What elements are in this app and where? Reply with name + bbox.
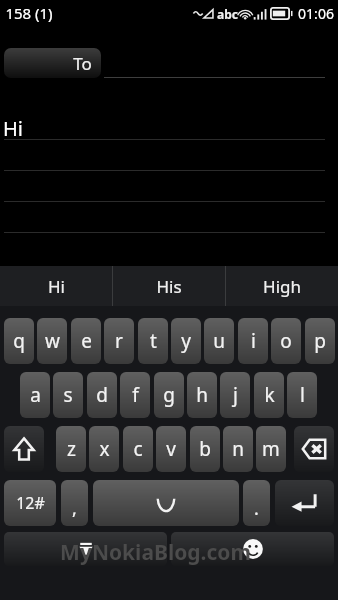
staticText: z — [67, 436, 76, 462]
staticText: High — [263, 275, 301, 298]
button[interactable]: i — [238, 318, 268, 364]
staticText: l — [300, 382, 305, 408]
staticText: 158 (1) — [5, 3, 53, 23]
staticText: j — [233, 382, 238, 408]
button[interactable]: n — [223, 426, 253, 472]
staticText: Hi — [3, 115, 23, 142]
button[interactable]: b — [190, 426, 220, 472]
button[interactable]: w — [37, 318, 67, 364]
button[interactable]: Hi — [0, 100, 338, 260]
staticText: y — [181, 328, 191, 354]
staticText: a — [30, 382, 41, 408]
staticText: MyNokiaBlog.com — [60, 538, 251, 567]
button[interactable]: 12# — [4, 480, 56, 526]
staticText: k — [264, 382, 275, 408]
button[interactable]: a — [20, 372, 50, 418]
staticText: To — [73, 52, 92, 75]
button[interactable]: f — [120, 372, 150, 418]
button[interactable]: Emoji — [171, 532, 334, 566]
button[interactable]: Hide keyboard — [4, 532, 167, 566]
button[interactable]: . — [243, 480, 270, 526]
staticText: v — [166, 436, 176, 462]
staticText: q — [13, 328, 25, 354]
button[interactable]: o — [271, 318, 301, 364]
button[interactable]: t — [138, 318, 168, 364]
staticText: p — [314, 328, 326, 354]
staticText: Hi — [48, 275, 65, 298]
staticText: t — [150, 328, 157, 354]
staticText: 01:06 — [298, 4, 334, 23]
button[interactable]: Hi — [0, 266, 112, 306]
button[interactable]: His — [113, 266, 225, 306]
staticText: n — [232, 436, 244, 462]
staticText: s — [63, 382, 73, 408]
staticText: , — [72, 496, 77, 521]
button[interactable]: g — [154, 372, 184, 418]
staticText: e — [81, 328, 92, 354]
button[interactable]: Backspace — [294, 426, 334, 472]
staticText: g — [163, 382, 175, 408]
button[interactable]: Shift — [4, 426, 44, 472]
button[interactable]: u — [204, 318, 234, 364]
button[interactable]: l — [287, 372, 317, 418]
staticText: i — [251, 328, 256, 354]
staticText: r — [115, 328, 123, 354]
button[interactable]: z — [56, 426, 86, 472]
button[interactable]: High — [226, 266, 338, 306]
button[interactable]: Space — [93, 480, 239, 526]
staticText: . — [254, 496, 259, 521]
button[interactable]: Enter — [275, 480, 334, 526]
staticText: h — [196, 382, 208, 408]
button[interactable]: p — [305, 318, 335, 364]
staticText: 12# — [16, 492, 45, 514]
staticText: u — [213, 328, 225, 354]
button[interactable]: y — [171, 318, 201, 364]
button[interactable]: d — [87, 372, 117, 418]
button[interactable]: q — [4, 318, 34, 364]
staticText: x — [99, 436, 110, 462]
staticText: m — [262, 436, 280, 462]
staticText: b — [199, 436, 211, 462]
button[interactable]: k — [254, 372, 284, 418]
button[interactable]: r — [104, 318, 134, 364]
button[interactable]: , — [61, 480, 88, 526]
staticText: abc — [217, 6, 238, 22]
button[interactable]: e — [71, 318, 101, 364]
staticText: w — [45, 328, 60, 354]
button[interactable]: x — [89, 426, 119, 472]
button[interactable]: j — [220, 372, 250, 418]
button[interactable]: c — [123, 426, 153, 472]
button[interactable]: v — [156, 426, 186, 472]
staticText: f — [132, 382, 139, 408]
button[interactable]: m — [256, 426, 286, 472]
button[interactable]: To — [4, 48, 101, 78]
staticText: His — [156, 275, 182, 298]
button[interactable]: h — [187, 372, 217, 418]
staticText: o — [280, 328, 292, 354]
staticText: c — [133, 436, 143, 462]
button[interactable]: s — [53, 372, 83, 418]
staticText: d — [96, 382, 108, 408]
